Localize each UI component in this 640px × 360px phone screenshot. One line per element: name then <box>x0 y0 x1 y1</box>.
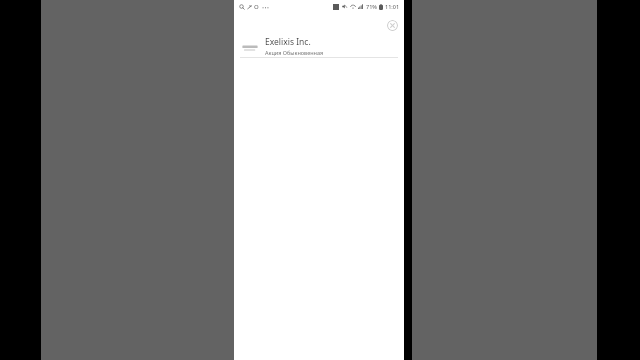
staticText: Exelixis Inc. <box>265 36 311 48</box>
button[interactable]: Exelixis Inc. <box>234 35 404 57</box>
staticText: O <box>254 3 259 11</box>
button[interactable]: Close <box>387 20 398 31</box>
staticText: Акция Обыкновенная <box>265 49 324 56</box>
staticText: 11:01 <box>385 3 400 10</box>
staticText: 71% <box>366 3 377 10</box>
